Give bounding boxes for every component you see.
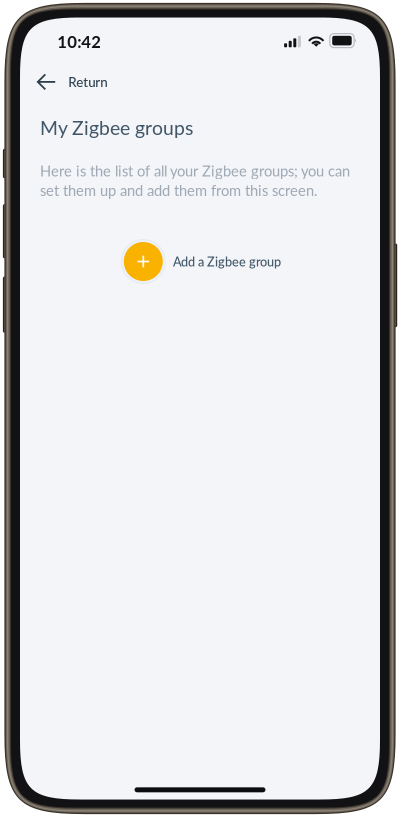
- button[interactable]: Return: [27, 64, 117, 100]
- staticText: 10:42: [57, 31, 101, 51]
- staticText: My Zigbee groups: [40, 116, 193, 139]
- staticText: Add a Zigbee group: [173, 254, 281, 269]
- staticText: Here is the list of all your Zigbee grou…: [40, 162, 350, 199]
- staticText: Return: [68, 74, 107, 90]
- button[interactable]: Add a Zigbee group: [121, 239, 281, 284]
